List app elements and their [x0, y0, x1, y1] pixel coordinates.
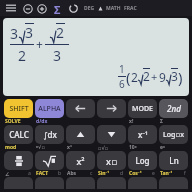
staticText: ▫√▫ — [98, 145, 109, 151]
staticText: 3 — [53, 46, 62, 65]
staticText: MATH — [106, 5, 121, 12]
staticText: d/dx — [36, 118, 48, 125]
button[interactable]: Key — [128, 177, 157, 189]
staticText: Abs — [67, 170, 77, 177]
staticText: SOLVE — [5, 118, 21, 125]
button[interactable]: Ln — [159, 151, 188, 170]
button[interactable]: x▫ — [97, 151, 126, 170]
staticText: 2 — [56, 23, 65, 42]
staticText: 2 — [143, 68, 150, 84]
staticText: ∫dx — [43, 129, 57, 140]
staticText: 10ˣ — [129, 144, 137, 151]
staticText: c — [90, 170, 93, 177]
staticText: Log — [135, 155, 150, 166]
staticText: f — [184, 170, 186, 177]
staticText: 2 — [18, 46, 27, 65]
button[interactable]: Fraction — [4, 151, 33, 170]
button[interactable]: Key — [4, 177, 33, 189]
staticText: + — [151, 69, 158, 84]
staticText: ) — [178, 67, 183, 87]
button[interactable]: 3 — [3, 18, 189, 96]
staticText: Log▫x — [163, 130, 184, 140]
staticText: x² — [76, 155, 85, 167]
button[interactable]: Key — [66, 177, 95, 189]
staticText: d — [120, 170, 124, 177]
staticText: ALPHA — [38, 104, 61, 114]
staticText: ⁿ√▫ — [36, 144, 45, 151]
staticText: CALC — [9, 129, 29, 140]
staticText: ( — [126, 67, 131, 87]
staticText: x⁻¹ — [138, 129, 148, 140]
staticText: x³ — [67, 144, 72, 151]
staticText: Sin⁻¹ — [98, 170, 110, 177]
staticText: a — [28, 170, 31, 177]
staticText: Tan⁻¹ — [160, 170, 173, 177]
staticText: FRAC — [124, 5, 137, 12]
button[interactable]: Sum — [51, 2, 63, 14]
staticText: eˣ — [160, 144, 165, 151]
staticText: 3 — [25, 23, 34, 42]
button[interactable]: x⁻¹ — [128, 125, 157, 144]
staticText: Cos⁻¹ — [129, 170, 142, 177]
staticText: 2nd — [167, 103, 181, 114]
button[interactable]: Right — [97, 99, 126, 118]
button[interactable]: MODE — [128, 99, 157, 118]
staticText: DEG — [84, 5, 95, 12]
button[interactable]: x² — [66, 151, 95, 170]
staticText: Σ — [54, 2, 61, 14]
button[interactable]: Square root — [35, 151, 64, 170]
button[interactable]: Menu — [4, 1, 18, 15]
button[interactable]: Key — [35, 177, 64, 189]
button[interactable]: Left — [66, 99, 95, 118]
staticText: e — [152, 170, 155, 177]
staticText: MODE — [132, 104, 153, 114]
staticText: 9 — [159, 69, 166, 85]
staticText: 6 — [119, 77, 125, 91]
button[interactable]: SHIFT — [4, 99, 33, 118]
button[interactable]: Zoom in — [35, 2, 48, 15]
button[interactable]: Up — [66, 125, 95, 144]
staticText: ∠ — [5, 171, 10, 177]
staticText: x▫ — [106, 155, 117, 167]
button[interactable]: 2nd — [159, 99, 188, 118]
button[interactable]: ALPHA — [35, 99, 64, 118]
button[interactable]: Log — [128, 151, 157, 170]
staticText: SHIFT — [9, 104, 29, 114]
staticText: Ln — [169, 155, 179, 166]
button[interactable]: Key — [159, 177, 188, 189]
staticText: b — [58, 170, 62, 177]
button[interactable]: Key — [97, 177, 126, 189]
staticText: 3 — [10, 24, 19, 43]
staticText: x! — [129, 118, 134, 125]
staticText: FACT — [36, 170, 49, 177]
staticText: 3 — [171, 68, 178, 84]
button[interactable]: Down — [97, 125, 126, 144]
staticText: mod — [5, 144, 17, 151]
button[interactable]: Log▫x — [159, 125, 188, 144]
staticText: 1 — [119, 62, 125, 76]
button[interactable]: Zoom out — [21, 2, 34, 15]
staticText: 2 — [131, 69, 138, 85]
staticText: + — [36, 36, 43, 52]
button[interactable]: ∫dx — [35, 125, 64, 144]
staticText: Σ — [160, 118, 163, 125]
button[interactable]: CALC — [4, 125, 33, 144]
button[interactable]: Refresh — [67, 2, 79, 14]
